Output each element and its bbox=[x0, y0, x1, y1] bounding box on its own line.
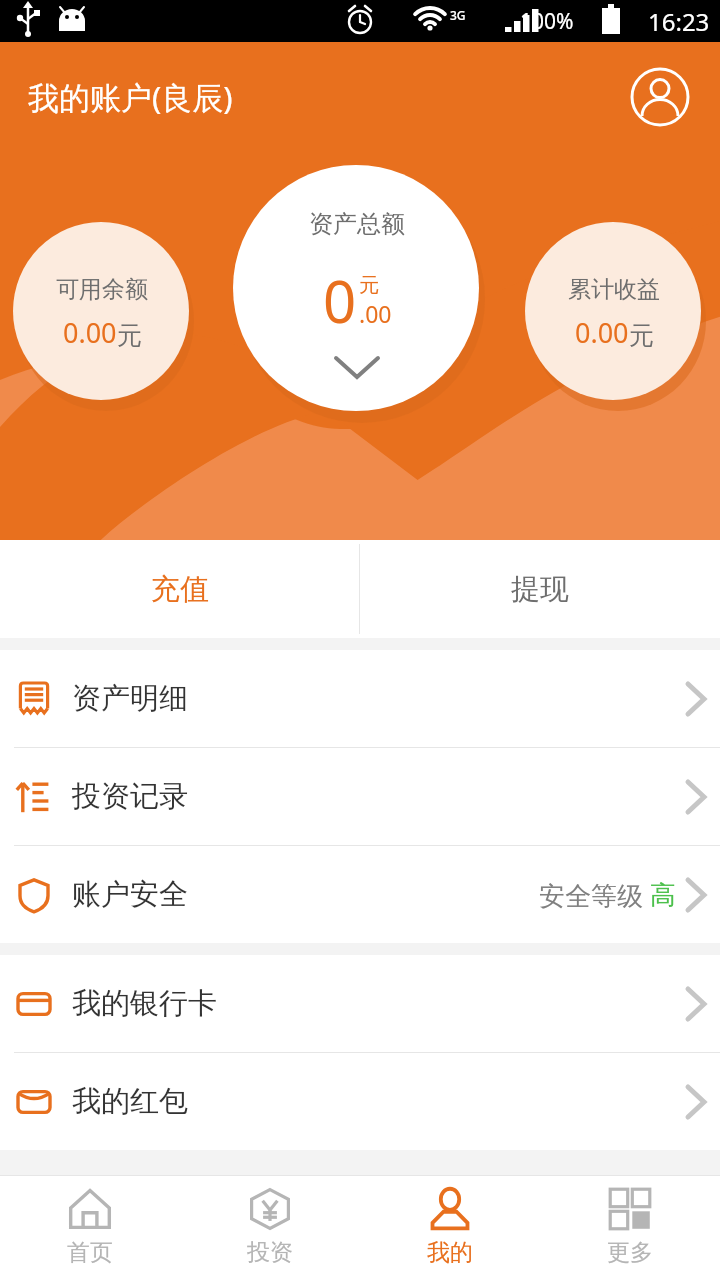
staticText: 提现 bbox=[511, 571, 569, 608]
staticText: 投资 bbox=[247, 1238, 293, 1267]
button[interactable]: 更多 bbox=[540, 1176, 720, 1280]
staticText: 元 bbox=[629, 320, 654, 351]
staticText: 安全等级 bbox=[539, 877, 650, 913]
button[interactable]: 账户安全 bbox=[0, 846, 720, 943]
staticText: 账户安全 bbox=[72, 876, 188, 913]
staticText: 我的银行卡 bbox=[72, 985, 217, 1022]
staticText: 累计收益 bbox=[568, 275, 660, 304]
staticText: 可用余额 bbox=[56, 275, 148, 304]
staticText: 资产总额 bbox=[309, 209, 405, 239]
staticText: 0.00 bbox=[63, 314, 117, 351]
staticText: 充值 bbox=[151, 571, 209, 608]
staticText: 元 bbox=[117, 320, 142, 351]
staticText: 我的账户(良辰) bbox=[28, 76, 233, 118]
button[interactable]: 提现 bbox=[360, 540, 720, 638]
staticText: 100% bbox=[520, 7, 574, 36]
button[interactable]: 充值 bbox=[0, 540, 359, 638]
staticText: 首页 bbox=[67, 1238, 113, 1267]
button[interactable]: 投资记录 bbox=[0, 748, 720, 845]
staticText: 16:23 bbox=[648, 5, 710, 38]
button[interactable]: 我的 bbox=[360, 1176, 540, 1280]
button[interactable]: 我的银行卡 bbox=[0, 955, 720, 1052]
staticText: 更多 bbox=[607, 1238, 653, 1267]
button[interactable]: 资产总额 bbox=[233, 165, 487, 423]
staticText: 我的 bbox=[427, 1238, 473, 1267]
staticText: 高 bbox=[650, 879, 676, 912]
button[interactable]: 投资 bbox=[180, 1176, 360, 1280]
staticText: .00 bbox=[359, 298, 392, 329]
button[interactable]: 资产明细 bbox=[0, 650, 720, 747]
staticText: 3G bbox=[450, 7, 466, 23]
staticText: 我的红包 bbox=[72, 1083, 188, 1120]
button[interactable]: Profile bbox=[628, 65, 692, 129]
staticText: 0 bbox=[323, 261, 357, 340]
staticText: 元 bbox=[359, 273, 379, 298]
staticText: 0.00 bbox=[575, 314, 629, 351]
staticText: 资产明细 bbox=[72, 680, 188, 717]
staticText: 投资记录 bbox=[72, 778, 188, 815]
button[interactable]: 首页 bbox=[0, 1176, 180, 1280]
button[interactable]: 我的红包 bbox=[0, 1053, 720, 1150]
